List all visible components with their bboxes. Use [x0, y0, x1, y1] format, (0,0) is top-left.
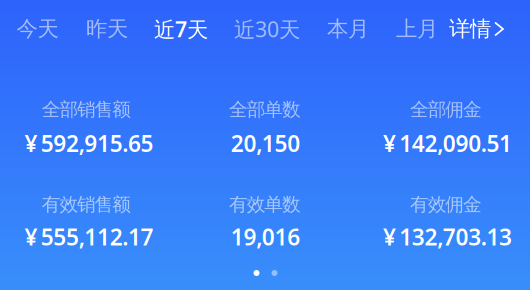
staticText: 有效单数 [229, 193, 301, 216]
staticText: ¥ 555,112.17 [24, 222, 154, 252]
staticText: 本月 [327, 16, 369, 42]
staticText: 昨天 [86, 16, 128, 42]
staticText: 上月 [396, 16, 438, 42]
button[interactable]: 详情 [441, 9, 511, 49]
staticText: ¥ 132,703.13 [383, 222, 512, 252]
button[interactable]: 上月 [386, 9, 448, 49]
staticText: 详情 [449, 16, 491, 42]
staticText: ¥ 592,915.65 [24, 128, 154, 158]
button[interactable]: 近7天 [144, 9, 218, 49]
button[interactable]: 昨天 [76, 9, 138, 49]
button[interactable]: 今天 [6, 9, 68, 49]
staticText: 近7天 [154, 15, 208, 43]
button[interactable]: 近30天 [224, 9, 310, 49]
staticText: 有效佣金 [410, 193, 482, 216]
staticText: 19,016 [231, 222, 300, 252]
staticText: 今天 [16, 16, 58, 42]
staticText: 全部单数 [229, 98, 301, 121]
staticText: 全部销售额 [42, 98, 131, 121]
staticText: 有效销售额 [42, 193, 131, 216]
staticText: 20,150 [231, 128, 300, 158]
button[interactable]: 本月 [317, 9, 379, 49]
staticText: 全部佣金 [410, 98, 482, 121]
staticText: 近30天 [234, 15, 300, 43]
staticText: ¥ 142,090.51 [383, 128, 512, 158]
